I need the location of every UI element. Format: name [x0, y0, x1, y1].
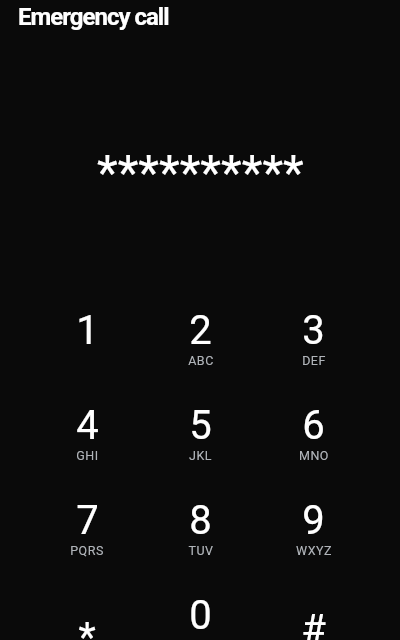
staticText: MNO [299, 448, 329, 463]
button[interactable]: Nine W X Y Z [257, 497, 370, 592]
staticText: 5 [189, 402, 212, 449]
staticText: 8 [189, 497, 212, 544]
staticText: GHI [76, 448, 99, 463]
button[interactable]: Two A B C [144, 307, 257, 402]
staticText: 0 [189, 592, 212, 639]
staticText: PQRS [70, 543, 104, 558]
staticText: TUV [188, 543, 214, 558]
staticText: ABC [188, 353, 214, 368]
button[interactable]: Four G H I [30, 402, 144, 497]
button[interactable]: Three D E F [257, 307, 370, 402]
staticText: DEF [302, 353, 326, 368]
staticText: 7 [76, 497, 99, 544]
staticText: 2 [189, 307, 212, 354]
button[interactable]: One [30, 307, 144, 402]
staticText: 4 [76, 402, 99, 449]
staticText: ********** [97, 144, 304, 200]
button[interactable]: Six M N O [257, 402, 370, 497]
staticText: JKL [189, 448, 212, 463]
staticText: WXYZ [296, 543, 332, 558]
button[interactable]: Pound [257, 592, 370, 640]
staticText: 6 [302, 402, 325, 449]
button[interactable]: Eight T U V [144, 497, 257, 592]
staticText: * [78, 614, 96, 640]
staticText: # [301, 606, 326, 640]
staticText: 9 [302, 497, 325, 544]
staticText: 3 [302, 307, 325, 354]
staticText: 1 [76, 307, 99, 354]
button[interactable]: Seven P Q R S [30, 497, 144, 592]
staticText: Emergency call [18, 3, 169, 31]
button[interactable]: Five J K L [144, 402, 257, 497]
button[interactable]: Star [30, 592, 144, 640]
button[interactable]: Zero [144, 592, 257, 640]
